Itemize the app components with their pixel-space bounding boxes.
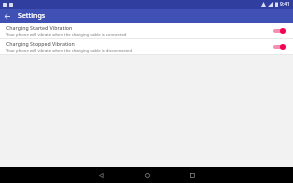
button[interactable]: Back [95, 169, 107, 181]
staticText: Your phone will vibrate when the chargin… [6, 32, 127, 38]
button[interactable]: Home [141, 169, 153, 181]
button[interactable]: Toggle [271, 25, 287, 37]
staticText: Your phone will vibrate when the chargin… [6, 48, 133, 54]
staticText: Settings [18, 11, 46, 21]
staticText: Charging Started Vibration [6, 24, 73, 31]
button[interactable]: Charging Started Vibration [0, 23, 293, 38]
button[interactable]: Back [0, 9, 14, 23]
button[interactable]: Toggle [271, 41, 287, 53]
button[interactable]: Recent apps [186, 169, 198, 181]
staticText: 9:41 [280, 1, 290, 8]
staticText: Charging Stopped Vibration [6, 40, 75, 47]
button[interactable]: Charging Stopped Vibration [0, 39, 293, 54]
